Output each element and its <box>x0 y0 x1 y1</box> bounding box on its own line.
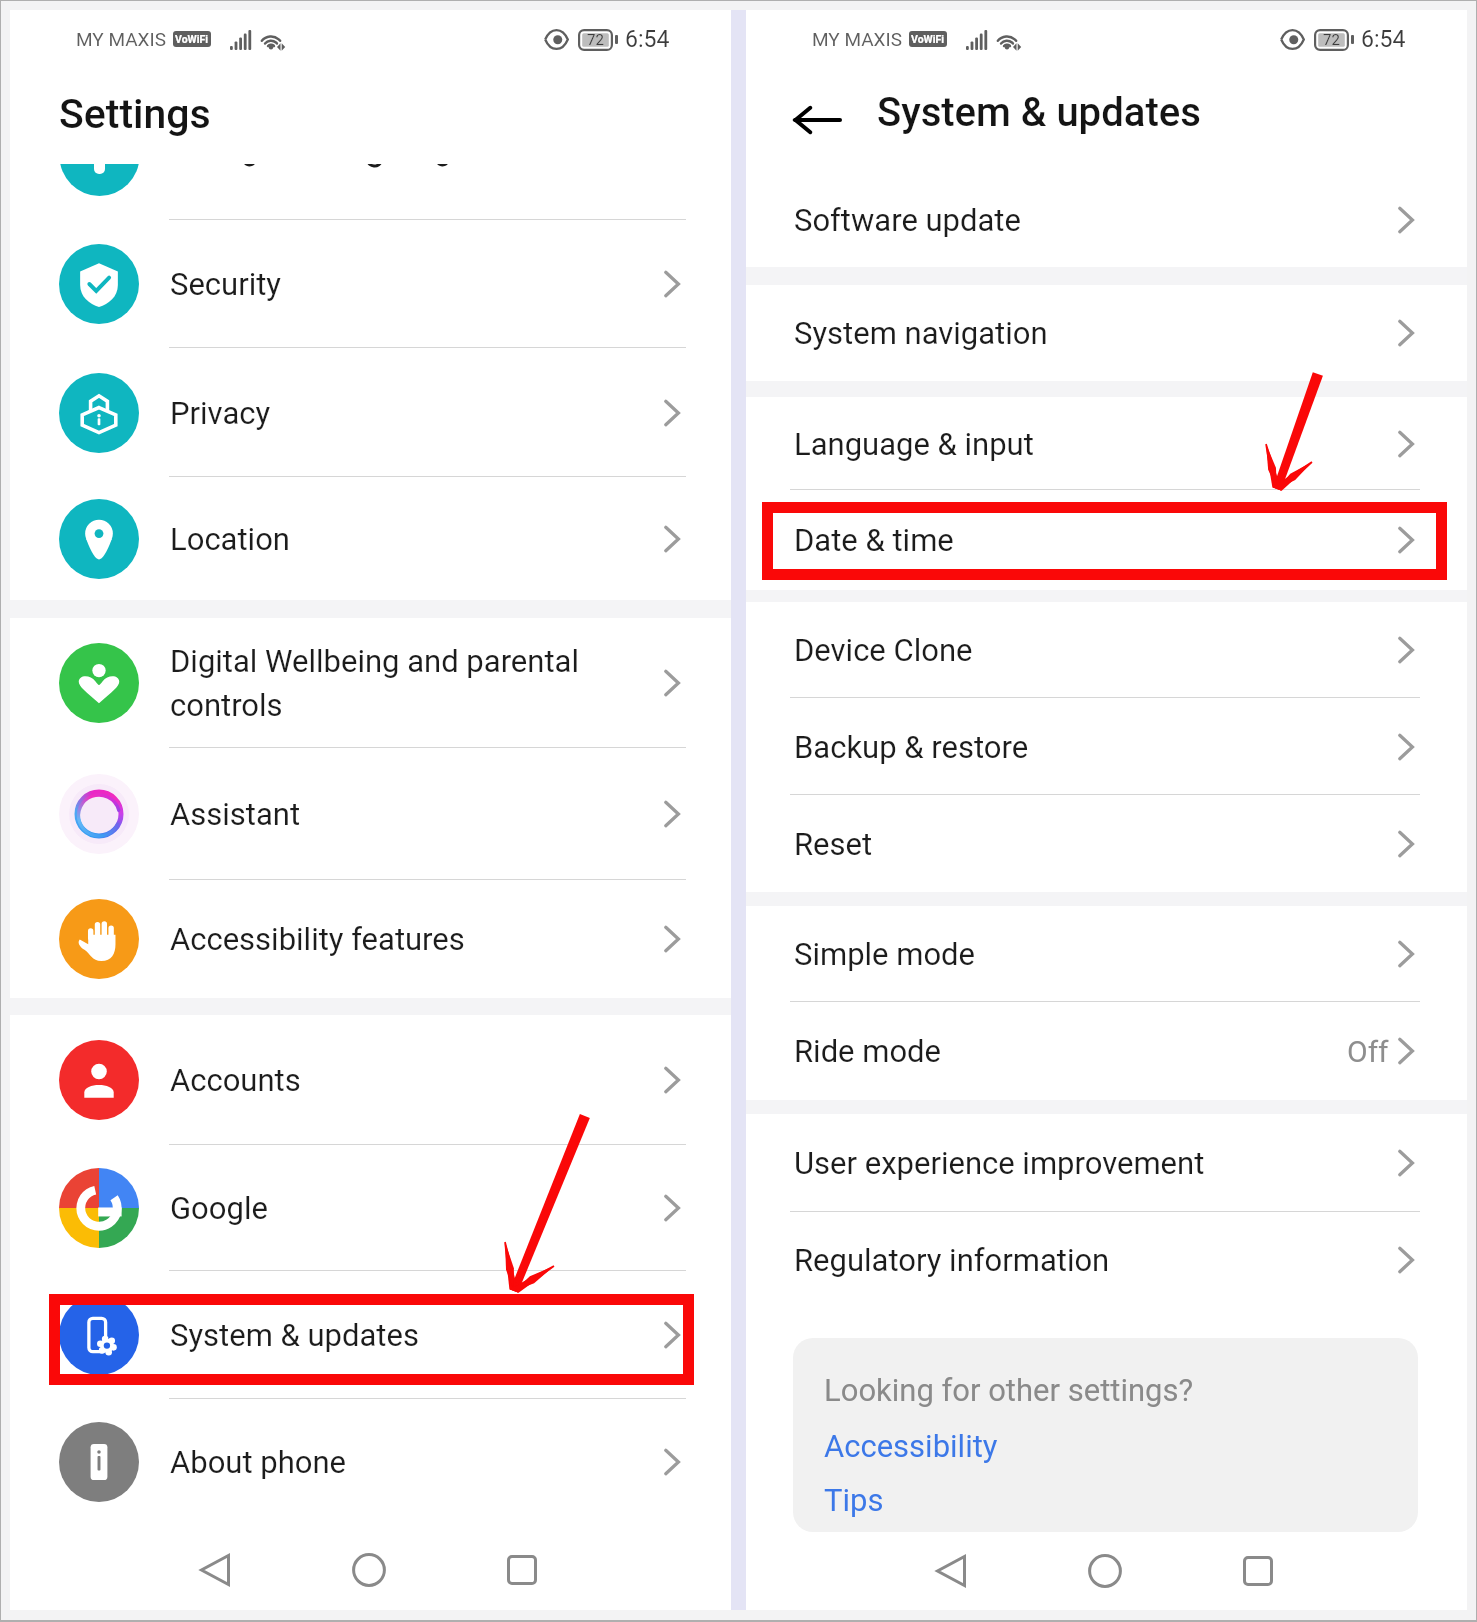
button[interactable]: Back <box>785 88 849 152</box>
staticText: Accessibility features <box>170 921 465 957</box>
staticText: VoWiFi <box>911 33 945 45</box>
staticText: Software update <box>794 202 1021 238</box>
staticText: About phone <box>170 1444 346 1480</box>
staticText: 72 <box>1323 31 1340 49</box>
button[interactable]: About phone <box>10 1399 731 1525</box>
staticText: Location <box>170 521 290 557</box>
staticText: Digital Wellbeing and parental controls <box>170 643 640 723</box>
staticText: Reset <box>794 826 873 862</box>
button[interactable]: Location <box>10 477 731 600</box>
staticText: VoWiFi <box>175 33 209 45</box>
staticText: Tips <box>824 1482 884 1518</box>
button[interactable]: User experience improvement <box>746 1114 1467 1212</box>
button[interactable]: Back <box>921 1541 981 1601</box>
button[interactable]: System navigation <box>746 285 1467 381</box>
button[interactable]: Regulatory information <box>746 1212 1467 1308</box>
staticText: 6:54 <box>1361 26 1406 53</box>
button[interactable]: Accessibility features <box>10 880 731 998</box>
staticText: MY MAXIS <box>812 28 902 50</box>
button[interactable]: Google <box>10 1145 731 1271</box>
staticText: Simple mode <box>794 936 975 972</box>
button[interactable]: Software update <box>746 172 1467 267</box>
button[interactable]: Tips <box>824 1472 884 1528</box>
button[interactable]: Back <box>185 1540 245 1600</box>
button[interactable]: Security <box>10 220 731 348</box>
staticText: MY MAXIS <box>76 28 166 50</box>
staticText: System & updates <box>877 89 1201 136</box>
button[interactable]: Simple mode <box>746 906 1467 1002</box>
staticText: System & updates <box>170 1317 419 1353</box>
button[interactable]: Date & time <box>746 490 1467 590</box>
staticText: Accounts <box>170 1062 301 1098</box>
staticText: 6:54 <box>625 26 670 53</box>
staticText: Accessibility <box>824 1428 998 1464</box>
button[interactable]: Accessibility <box>824 1418 998 1474</box>
staticText: Settings <box>59 90 211 138</box>
button[interactable]: Home <box>1075 1541 1135 1601</box>
staticText: Security <box>170 266 282 302</box>
button[interactable] <box>10 164 731 220</box>
staticText: Ride mode <box>794 1033 942 1069</box>
staticText: Assistant <box>170 796 301 832</box>
button[interactable]: Digital Wellbeing and parental controls <box>10 618 731 748</box>
button[interactable]: Device Clone <box>746 602 1467 698</box>
button[interactable]: Backup & restore <box>746 698 1467 795</box>
staticText: User experience improvement <box>794 1145 1205 1181</box>
staticText: Google <box>170 1190 268 1226</box>
staticText: Date & time <box>794 522 954 558</box>
staticText: Regulatory information <box>794 1242 1110 1278</box>
button[interactable]: System & updates <box>10 1271 731 1399</box>
staticText: System navigation <box>794 315 1048 351</box>
button[interactable]: Reset <box>746 795 1467 892</box>
button[interactable]: Accounts <box>10 1015 731 1145</box>
staticText: Looking for other settings? <box>824 1372 1194 1408</box>
button[interactable]: Language & input <box>746 397 1467 490</box>
staticText: Device Clone <box>794 632 973 668</box>
button[interactable]: Privacy <box>10 348 731 477</box>
button[interactable]: Assistant <box>10 748 731 880</box>
button[interactable]: Home <box>339 1540 399 1600</box>
staticText: Language & input <box>794 426 1034 462</box>
button[interactable]: Recents <box>492 1540 552 1600</box>
staticText: Backup & restore <box>794 729 1029 765</box>
staticText: 72 <box>587 31 604 49</box>
staticText: Off <box>1347 1034 1389 1069</box>
staticText: Privacy <box>170 395 271 431</box>
button[interactable]: Ride mode <box>746 1002 1467 1100</box>
button[interactable]: Recents <box>1228 1541 1288 1601</box>
